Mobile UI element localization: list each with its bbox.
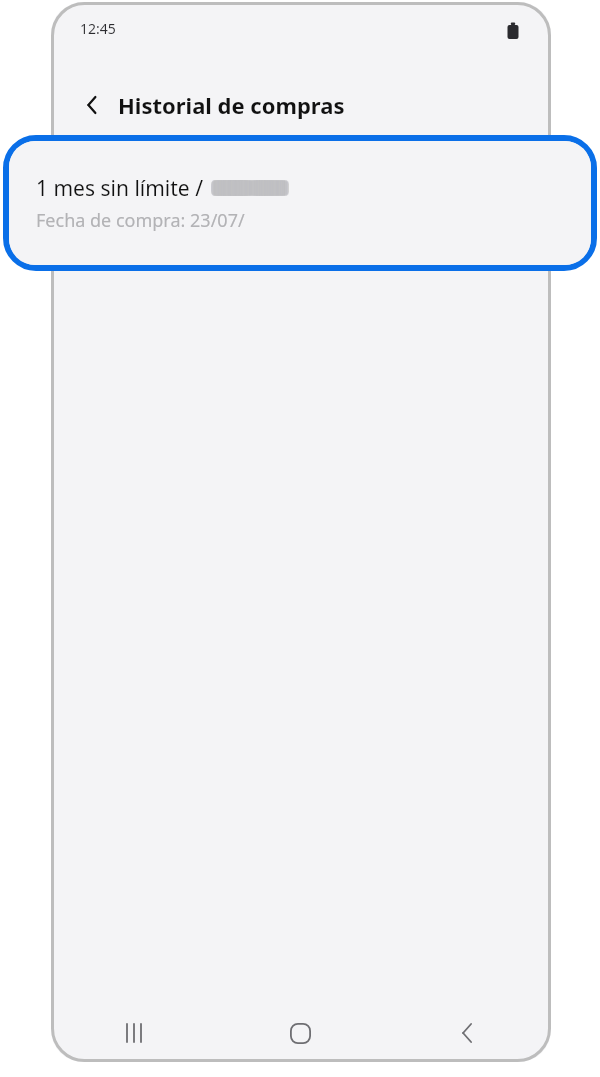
button[interactable]: Back — [77, 89, 109, 121]
button[interactable]: 1 mes sin límite / — [3, 135, 597, 271]
staticText: 1 mes sin límite / — [36, 174, 209, 203]
button[interactable]: Home — [217, 1004, 384, 1062]
staticText: Fecha de compra: 23/07/ — [36, 208, 245, 233]
button[interactable]: Recent apps — [51, 1004, 217, 1062]
staticText: 12:45 — [80, 19, 116, 38]
staticText: Historial de compras — [118, 90, 345, 120]
button[interactable]: Back — [384, 1004, 551, 1062]
